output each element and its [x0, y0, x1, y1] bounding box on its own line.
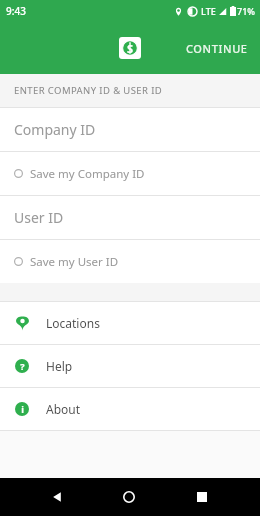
button[interactable]: Home — [114, 482, 144, 512]
button[interactable]: Save my Company ID — [0, 152, 260, 195]
staticText: Save my User ID — [30, 254, 119, 270]
staticText: 71% — [237, 5, 255, 17]
button[interactable]: i — [0, 388, 260, 430]
staticText: About — [46, 401, 81, 417]
staticText: Help — [46, 358, 73, 374]
button[interactable]: Save my User ID — [0, 240, 260, 283]
button[interactable]: User ID — [0, 196, 260, 239]
staticText: Locations — [46, 315, 100, 331]
staticText: i — [21, 403, 24, 415]
staticText: LTE — [201, 5, 216, 17]
staticText: Company ID — [14, 120, 96, 139]
button[interactable]: ? — [0, 345, 260, 387]
staticText: 9:43 — [6, 4, 26, 18]
button[interactable]: Company ID — [0, 108, 260, 151]
staticText: Save my Company ID — [30, 166, 145, 182]
button[interactable]: Back — [42, 482, 72, 512]
button[interactable]: CONTINUE — [174, 29, 260, 68]
button[interactable]: App logo — [119, 37, 141, 59]
staticText: CONTINUE — [186, 41, 248, 56]
button[interactable]: Locations — [0, 302, 260, 344]
button[interactable]: Recent apps — [187, 482, 217, 512]
staticText: ENTER COMPANY ID & USER ID — [14, 84, 163, 97]
staticText: S — [127, 41, 134, 56]
staticText: ? — [20, 360, 25, 372]
staticText: User ID — [14, 208, 64, 227]
